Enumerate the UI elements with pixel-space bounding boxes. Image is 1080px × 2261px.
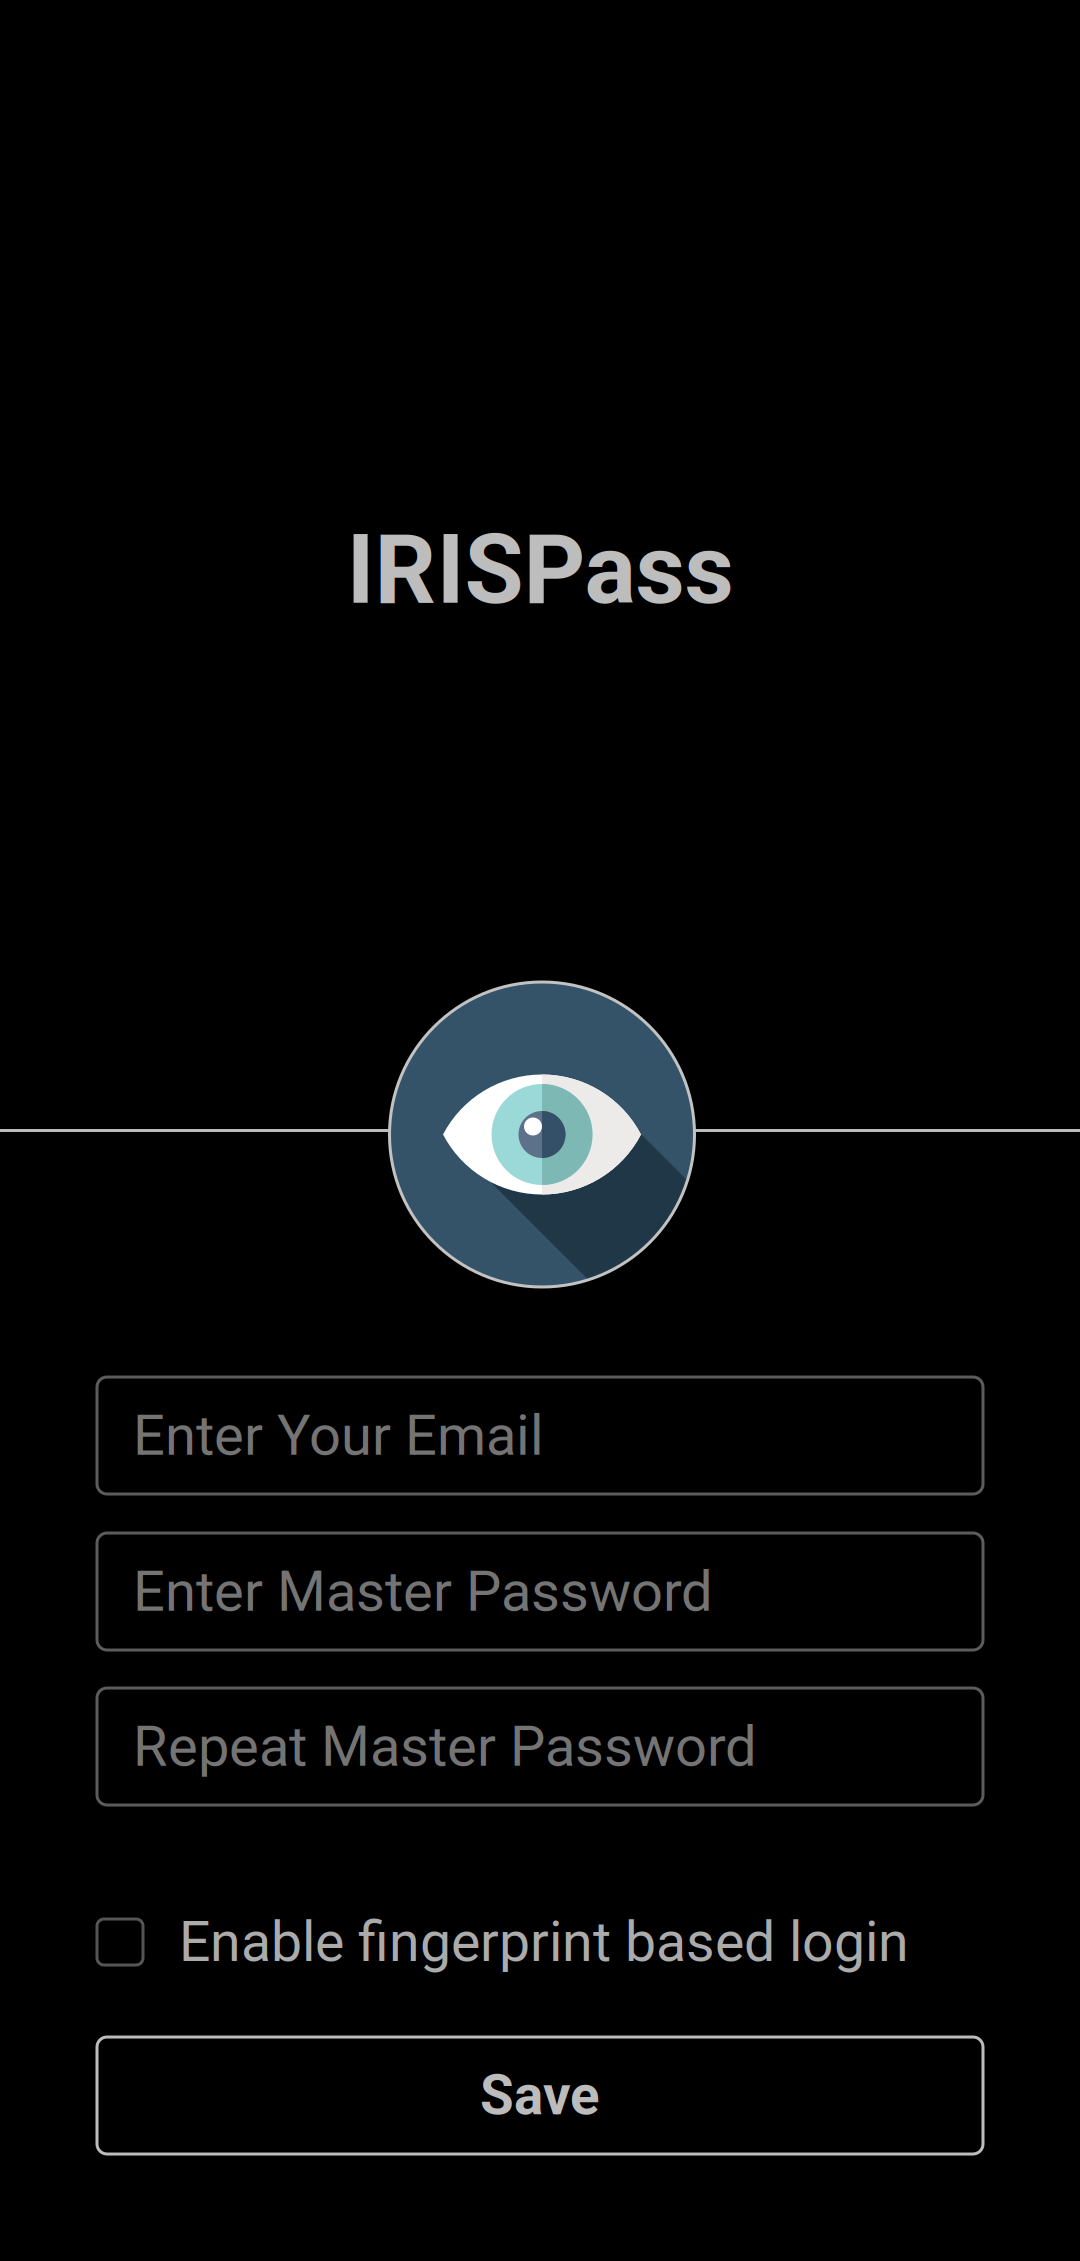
staticText: Enable fingerprint based login [179,1910,909,1974]
staticText: IRISPass [346,514,733,626]
button[interactable]: Save [97,2037,983,2154]
staticText: Enter Your Email [133,1403,544,1468]
staticText: Save [480,2063,600,2128]
staticText: Repeat Master Password [133,1714,757,1779]
button[interactable]: Repeat Master Password [97,1688,983,1805]
button[interactable]: Enter Your Email [97,1377,983,1494]
button[interactable]: Enable fingerprint based login [97,1919,983,1965]
staticText: Enter Master Password [133,1559,713,1624]
button[interactable]: Enter Master Password [97,1533,983,1650]
